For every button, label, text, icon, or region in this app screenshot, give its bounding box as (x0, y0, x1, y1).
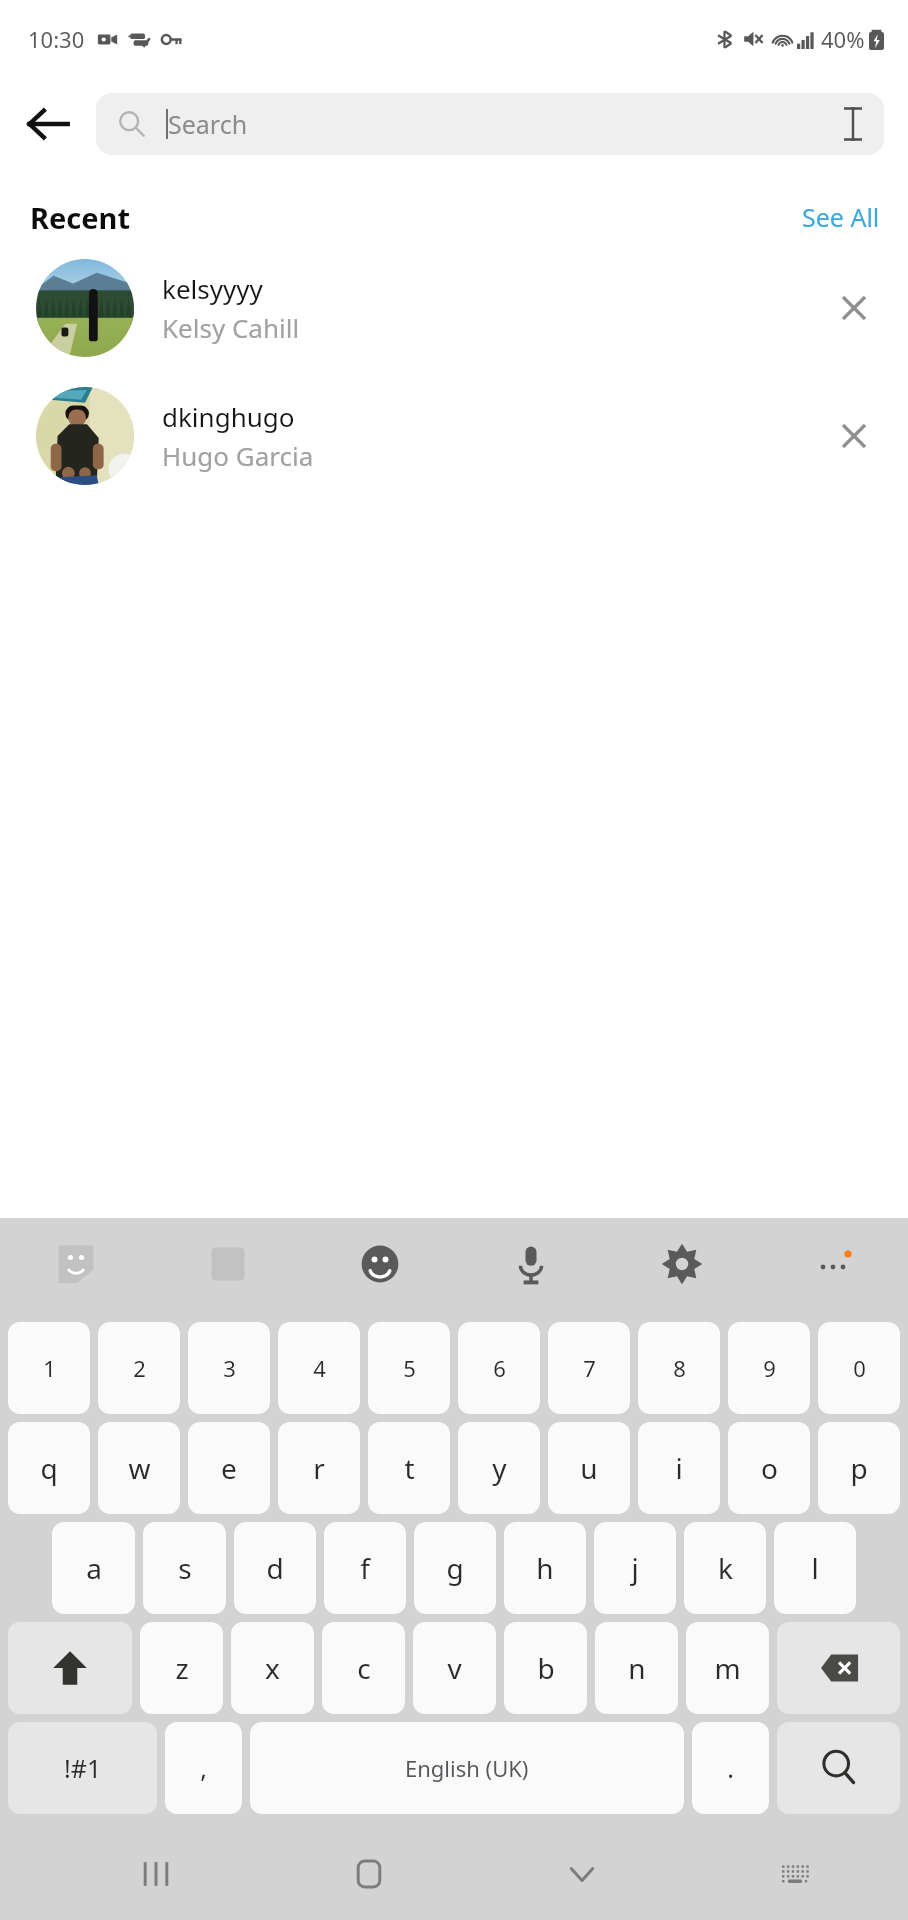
button[interactable]: t (368, 1422, 450, 1514)
staticText: r (313, 1449, 325, 1487)
button[interactable]: j (594, 1522, 676, 1614)
staticText: . (727, 1751, 734, 1785)
button[interactable]: 8 (638, 1322, 720, 1414)
button[interactable]: r (278, 1422, 360, 1514)
button[interactable]: n (595, 1622, 678, 1714)
button[interactable]: Back (0, 78, 96, 170)
button[interactable]: , (165, 1722, 242, 1814)
button[interactable]: 2 (98, 1322, 180, 1414)
staticText: q (40, 1449, 58, 1487)
button[interactable]: dkinghugo (0, 382, 908, 490)
button[interactable]: Hide keyboard (536, 1828, 628, 1920)
staticText: m (714, 1649, 741, 1687)
staticText: 2 (133, 1353, 146, 1383)
button[interactable]: Switch keyboard (749, 1828, 841, 1920)
button[interactable]: p (818, 1422, 900, 1514)
staticText: j (631, 1549, 639, 1587)
staticText: k (718, 1549, 733, 1587)
staticText: 4 (313, 1353, 326, 1383)
staticText: 3 (223, 1353, 236, 1383)
button[interactable]: Remove dkinghugo (812, 394, 896, 478)
button[interactable]: kelsyyyy (0, 254, 908, 362)
button[interactable]: w (98, 1422, 180, 1514)
button[interactable]: Backspace (777, 1622, 900, 1714)
staticText: w (128, 1449, 151, 1487)
staticText: a (86, 1549, 102, 1587)
button[interactable]: b (504, 1622, 587, 1714)
button[interactable]: 3 (188, 1322, 270, 1414)
staticText: 1 (43, 1353, 56, 1383)
staticText: o (761, 1449, 778, 1487)
button[interactable]: Voice input (455, 1218, 606, 1310)
button[interactable]: Keyboard settings (606, 1218, 757, 1310)
button[interactable]: Home (323, 1828, 415, 1920)
staticText: u (580, 1449, 598, 1487)
button[interactable]: u (548, 1422, 630, 1514)
staticText: n (628, 1649, 646, 1687)
staticText: h (536, 1549, 554, 1587)
button[interactable]: g (414, 1522, 496, 1614)
staticText: e (221, 1449, 237, 1487)
staticText: 0 (853, 1353, 866, 1383)
button[interactable]: More options (757, 1218, 908, 1310)
staticText: kelsyyyy (162, 271, 263, 306)
button[interactable]: Shift (8, 1622, 132, 1714)
button[interactable]: l (774, 1522, 856, 1614)
staticText: t (404, 1449, 415, 1487)
button[interactable]: 7 (548, 1322, 630, 1414)
button[interactable]: f (324, 1522, 406, 1614)
button[interactable]: Search (96, 93, 884, 155)
button[interactable]: 4 (278, 1322, 360, 1414)
button[interactable]: c (322, 1622, 405, 1714)
staticText: v (447, 1649, 462, 1687)
staticText: 5 (403, 1353, 416, 1383)
button[interactable]: Emoji (304, 1218, 455, 1310)
staticText: , (200, 1751, 207, 1785)
button[interactable]: y (458, 1422, 540, 1514)
button[interactable]: q (8, 1422, 90, 1514)
staticText: c (357, 1649, 371, 1687)
staticText: i (675, 1449, 683, 1487)
button[interactable]: a (52, 1522, 135, 1614)
staticText: English (UK) (405, 1753, 529, 1783)
button[interactable]: h (504, 1522, 586, 1614)
staticText: 6 (493, 1353, 506, 1383)
button[interactable]: GIF (152, 1218, 304, 1310)
button[interactable]: k (684, 1522, 766, 1614)
button[interactable]: 5 (368, 1322, 450, 1414)
staticText: 10:30 (28, 24, 85, 54)
staticText: See All (802, 200, 880, 234)
button[interactable]: Remove kelsyyyy (812, 266, 896, 350)
button[interactable]: Recent apps (110, 1828, 202, 1920)
staticText: 7 (583, 1353, 596, 1383)
button[interactable]: 9 (728, 1322, 810, 1414)
button[interactable]: x (231, 1622, 314, 1714)
button[interactable]: s (143, 1522, 226, 1614)
button[interactable]: 6 (458, 1322, 540, 1414)
staticText: 9 (763, 1353, 776, 1383)
button[interactable]: . (692, 1722, 769, 1814)
staticText: dkinghugo (162, 399, 295, 434)
staticText: b (537, 1649, 555, 1687)
button[interactable]: 1 (8, 1322, 90, 1414)
button[interactable]: z (140, 1622, 223, 1714)
staticText: Hugo Garcia (162, 438, 314, 473)
button[interactable]: !#1 (8, 1722, 157, 1814)
button[interactable]: English (UK) (250, 1722, 684, 1814)
button[interactable]: o (728, 1422, 810, 1514)
button[interactable]: m (686, 1622, 769, 1714)
button[interactable]: e (188, 1422, 270, 1514)
staticText: f (360, 1549, 370, 1587)
button[interactable]: v (413, 1622, 496, 1714)
button[interactable]: 0 (818, 1322, 900, 1414)
staticText: g (446, 1549, 464, 1587)
staticText: y (492, 1449, 507, 1487)
button[interactable]: i (638, 1422, 720, 1514)
button[interactable]: See All (774, 194, 908, 240)
button[interactable]: d (234, 1522, 316, 1614)
staticText: d (266, 1549, 284, 1587)
button[interactable]: Search (777, 1722, 900, 1814)
button[interactable]: Stickers (0, 1218, 152, 1310)
staticText: z (175, 1649, 189, 1687)
staticText: x (265, 1649, 280, 1687)
